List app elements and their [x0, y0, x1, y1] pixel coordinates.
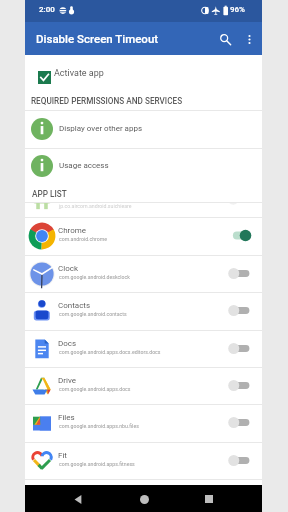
button[interactable]: More options	[236, 26, 262, 52]
button[interactable]: Activate app	[25, 56, 262, 94]
staticText: Contacts	[58, 301, 91, 310]
button[interactable]: Toggle	[227, 225, 248, 246]
staticText: com.google.android.apps.fitness	[59, 461, 135, 467]
staticText: REQUIRED PERMISSIONS AND SERVICES	[31, 96, 183, 106]
button[interactable]: Recents	[196, 486, 222, 512]
button[interactable]: Toggle	[227, 300, 248, 321]
button[interactable]: Fit	[25, 442, 262, 479]
staticText: com.android.chrome	[59, 236, 107, 242]
staticText: Files	[58, 413, 75, 422]
button[interactable]: Home	[131, 486, 157, 512]
staticText: Activate app	[54, 68, 104, 79]
staticText: APP LIST	[32, 189, 67, 199]
staticText: com.google.android.deskclock	[59, 274, 130, 280]
staticText: com.google.android.apps.docs.editors.doc…	[59, 349, 161, 355]
button[interactable]: Toggle	[227, 375, 248, 396]
staticText: Chrome	[58, 226, 87, 235]
staticText: Drive	[58, 376, 76, 385]
staticText: Clock	[58, 264, 78, 273]
staticText: Docs	[58, 339, 77, 348]
staticText: Fit	[58, 451, 67, 460]
button[interactable]: Search	[211, 25, 239, 53]
button[interactable]: Display over other apps	[25, 111, 262, 148]
button[interactable]: Contacts	[25, 292, 262, 329]
button[interactable]: Files	[25, 404, 262, 441]
button[interactable]: Docs	[25, 330, 262, 367]
button[interactable]: Toggle	[227, 450, 248, 471]
button[interactable]: Toggle	[227, 412, 248, 433]
button[interactable]: Toggle	[227, 263, 248, 284]
button[interactable]: Toggle	[227, 338, 248, 359]
staticText: jp.co.aircorn.android.suichieare	[59, 203, 132, 209]
button[interactable]: Chrome	[25, 217, 262, 254]
button[interactable]: jp.co.aircorn.android.suichieare	[25, 203, 262, 217]
button[interactable]: Clock	[25, 255, 262, 292]
staticText: Disable Screen Timeout	[36, 32, 159, 45]
button[interactable]: Back	[65, 486, 91, 512]
button[interactable]: Usage access	[25, 148, 262, 185]
staticText: com.google.android.apps.docs	[59, 386, 131, 392]
staticText: Usage access	[59, 161, 109, 170]
staticText: 2:00	[39, 5, 55, 14]
staticText: com.google.android.contacts	[59, 311, 127, 317]
staticText: 96%	[230, 5, 245, 14]
button[interactable]: Drive	[25, 367, 262, 404]
staticText: Display over other apps	[59, 124, 143, 133]
staticText: com.google.android.apps.nbu.files	[59, 423, 139, 429]
